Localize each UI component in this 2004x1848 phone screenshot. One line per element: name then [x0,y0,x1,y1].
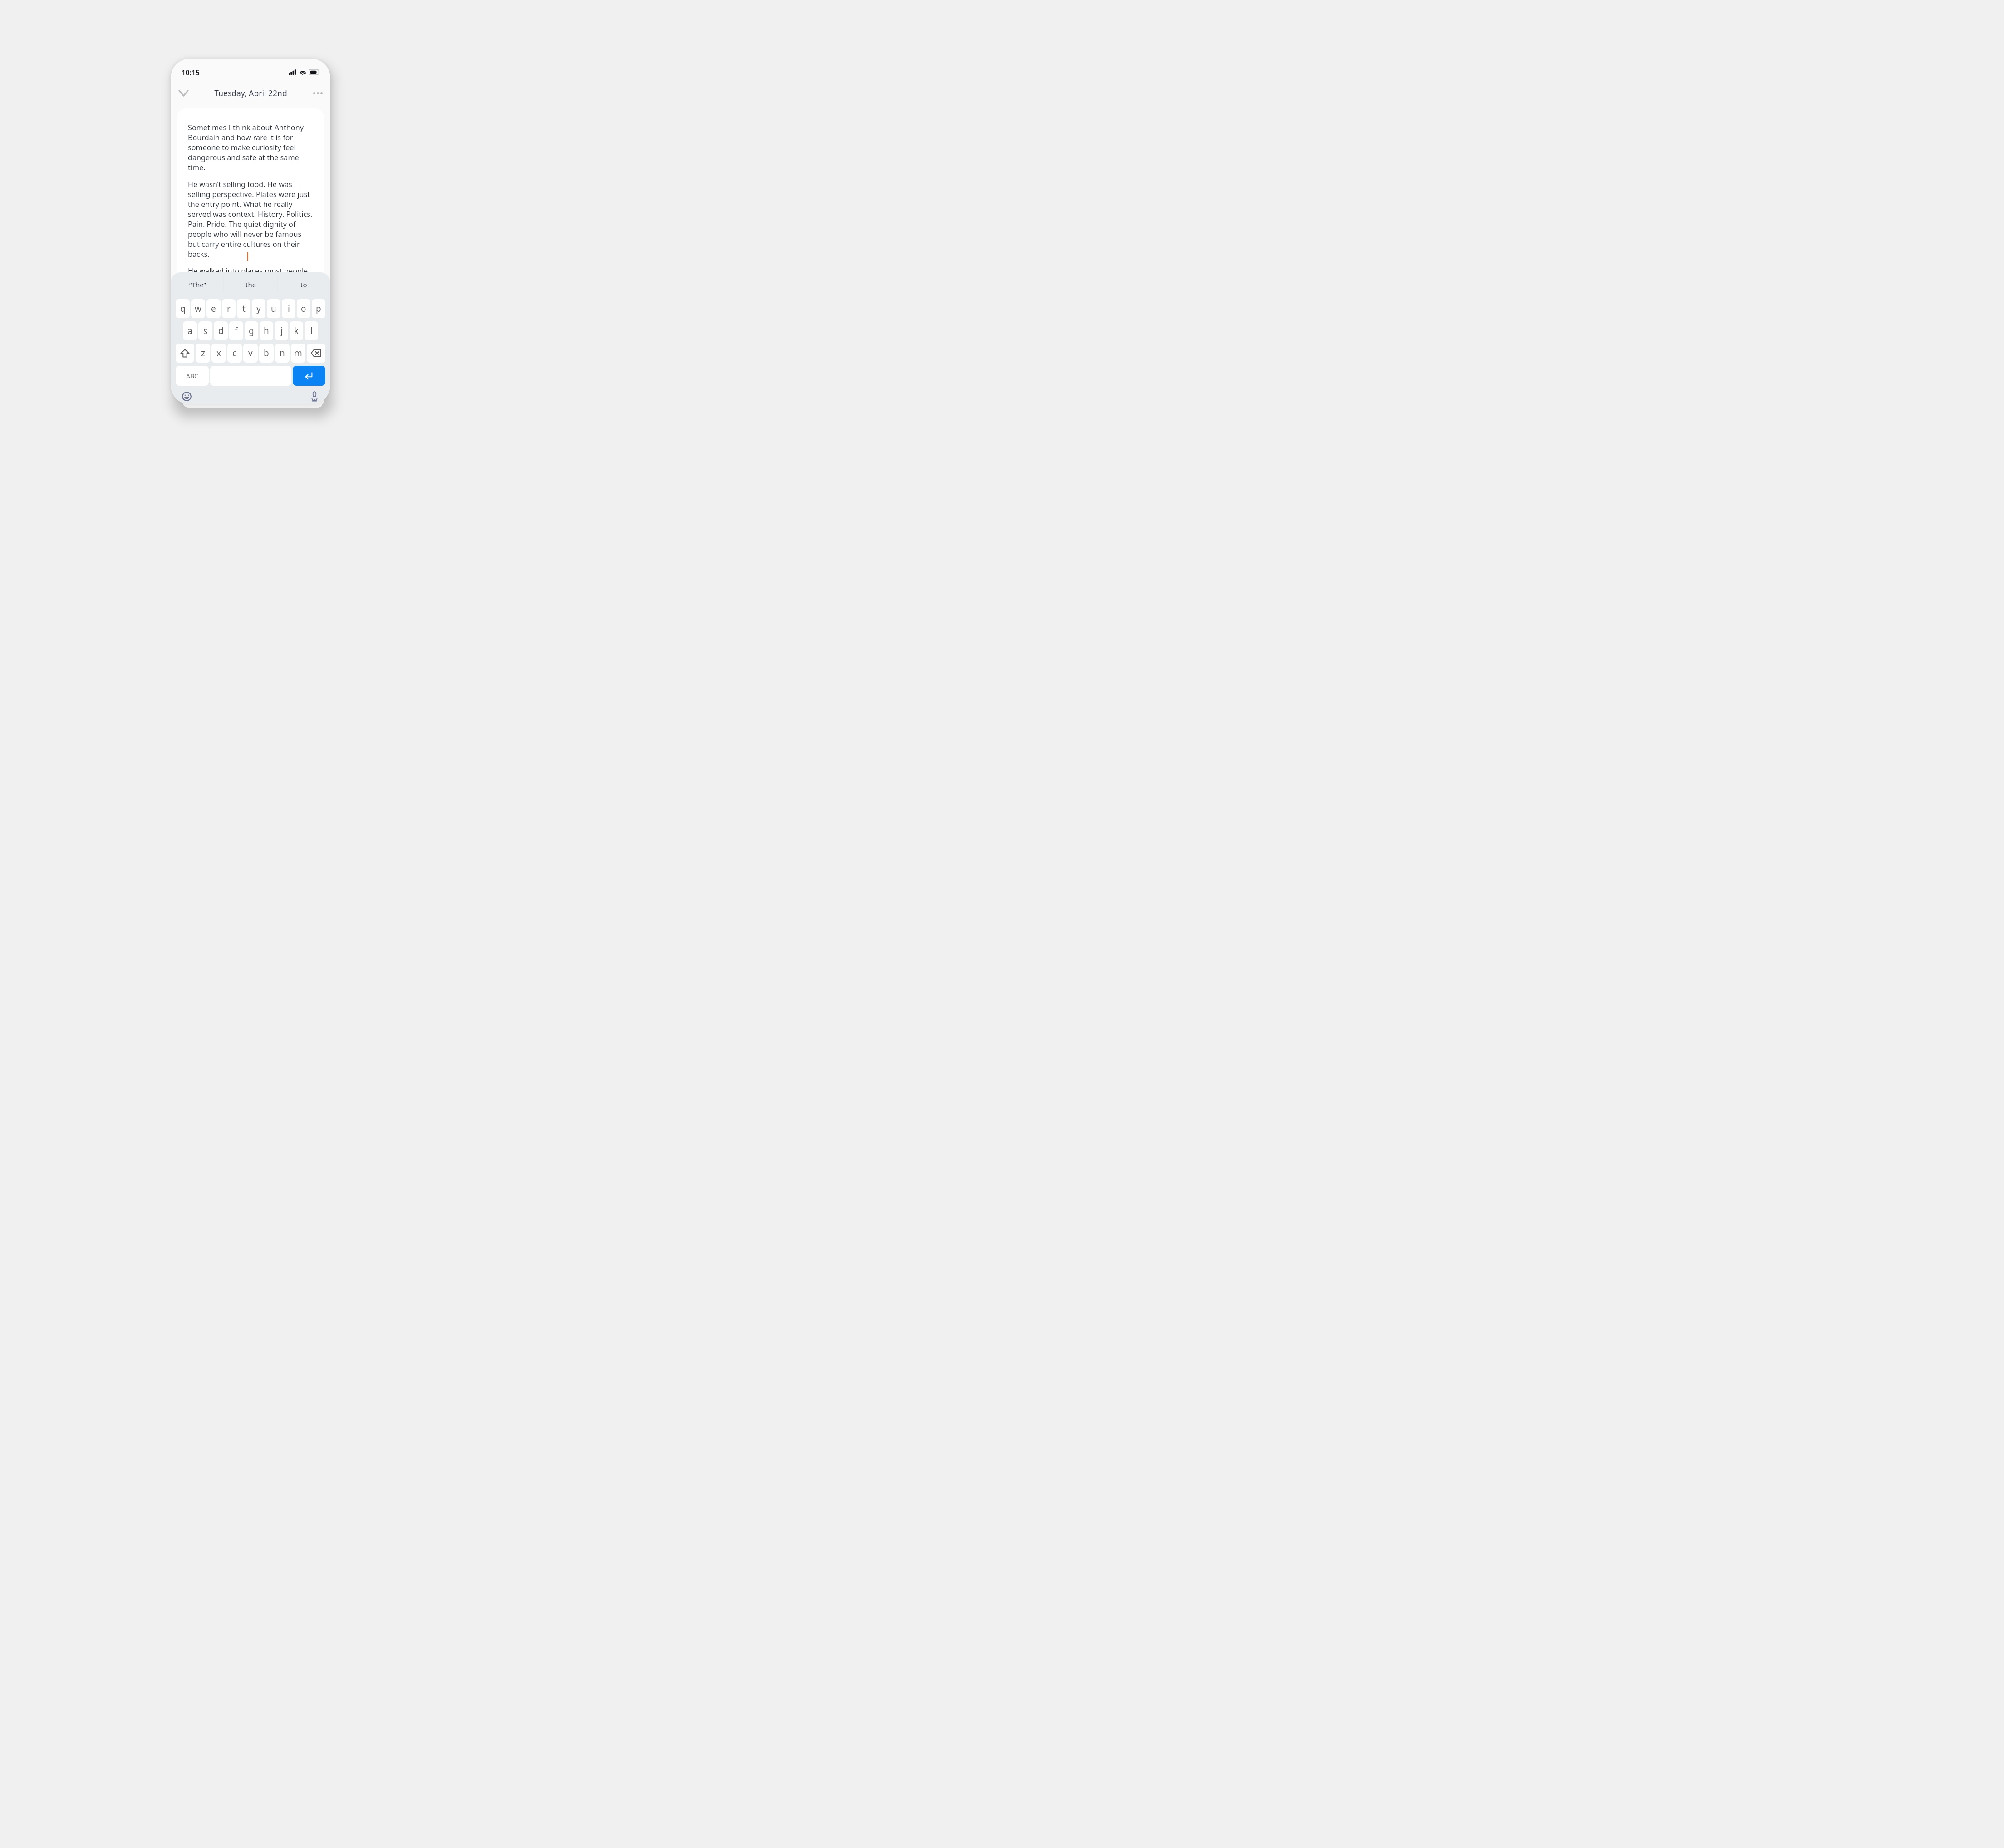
staticText: He wasn’t selling food. He was selling p… [188,179,315,259]
staticText: y [256,303,261,315]
button[interactable]: g [245,321,258,340]
staticText: l [310,325,313,337]
staticText: Tuesday, April 22nd [214,88,287,98]
button[interactable]: Shift [176,344,194,363]
button[interactable]: h [260,321,273,340]
staticText: ABC [186,372,198,380]
button[interactable]: “The” [171,272,224,297]
button[interactable]: r [222,299,236,318]
button[interactable]: Enter [293,366,325,386]
staticText: q [180,303,186,315]
button[interactable]: m [291,344,305,363]
staticText: v [248,347,253,359]
staticText: r [227,303,231,315]
button[interactable]: a [183,321,197,340]
button[interactable]: s [198,321,212,340]
staticText: b [264,347,269,359]
staticText: k [294,325,299,337]
button[interactable]: i [282,299,295,318]
staticText: i [288,303,290,315]
button[interactable]: the [224,272,277,297]
button[interactable]: j [275,321,288,340]
button[interactable]: ABC [176,366,209,386]
staticText: “The” [189,280,206,289]
button[interactable]: Voice input [305,390,324,403]
button[interactable]: Sometimes I think about Anthony Bourdain… [177,108,324,272]
button[interactable]: k [290,321,303,340]
button[interactable]: e [206,299,221,318]
button[interactable]: c [227,344,242,363]
button[interactable]: u [267,299,280,318]
button[interactable]: o [297,299,310,318]
button[interactable]: to [277,272,330,297]
staticText: x [216,347,221,359]
staticText: o [301,303,306,315]
staticText: u [271,303,276,315]
staticText: t [242,303,246,315]
staticText: m [294,347,302,359]
button[interactable]: t [237,299,250,318]
staticText: s [203,325,208,337]
button[interactable]: q [176,299,190,318]
staticText: j [280,325,283,337]
staticText: g [249,325,254,337]
staticText: a [187,325,192,337]
button[interactable]: n [275,344,290,363]
staticText: Sometimes I think about Anthony Bourdain… [188,123,315,172]
staticText: p [316,303,321,315]
button[interactable]: p [312,299,325,318]
button[interactable]: z [196,344,210,363]
staticText: He walked into places most people are to… [188,266,315,272]
staticText: d [218,325,224,337]
button[interactable]: d [214,321,228,340]
staticText: n [280,347,285,359]
button[interactable]: Emoji [177,390,196,403]
staticText: 10:15 [182,68,200,77]
button[interactable]: l [305,321,318,340]
staticText: to [300,280,307,289]
staticText: h [264,325,269,337]
staticText: c [232,347,237,359]
button[interactable]: Backspace [307,344,325,363]
button[interactable]: x [211,344,226,363]
button[interactable]: v [243,344,258,363]
staticText: f [235,325,238,337]
button[interactable]: w [191,299,205,318]
button[interactable]: b [259,344,274,363]
button[interactable]: More options [308,83,328,103]
button[interactable]: f [229,321,243,340]
button[interactable]: y [252,299,265,318]
button[interactable]: Collapse [173,83,193,103]
staticText: w [195,303,201,315]
staticText: z [201,347,205,359]
staticText: e [211,303,216,315]
staticText: the [246,280,256,289]
